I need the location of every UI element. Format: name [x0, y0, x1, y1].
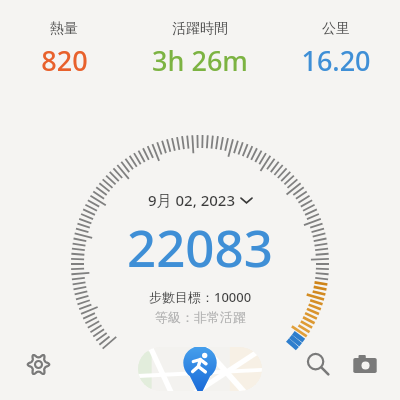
- button[interactable]: Camera: [343, 342, 387, 386]
- button[interactable]: 活躍時間: [124, 20, 275, 79]
- button[interactable]: 9月 02, 2023: [144, 188, 256, 212]
- staticText: 活躍時間: [172, 20, 228, 38]
- staticText: 16.20: [301, 42, 371, 79]
- staticText: 3h 26m: [152, 42, 248, 79]
- button[interactable]: Search: [296, 342, 340, 386]
- staticText: 9月 02, 2023: [148, 190, 235, 210]
- staticText: 步數目標：10000: [149, 288, 252, 306]
- button[interactable]: 公里: [275, 20, 396, 79]
- staticText: 820: [41, 42, 88, 79]
- staticText: 等級：非常活躍: [155, 309, 246, 325]
- staticText: 公里: [322, 20, 350, 38]
- button[interactable]: Running route map: [138, 347, 262, 391]
- button[interactable]: 熱量: [4, 20, 124, 79]
- staticText: 22083: [127, 212, 273, 281]
- button[interactable]: Settings: [16, 342, 60, 386]
- staticText: 熱量: [50, 20, 78, 38]
